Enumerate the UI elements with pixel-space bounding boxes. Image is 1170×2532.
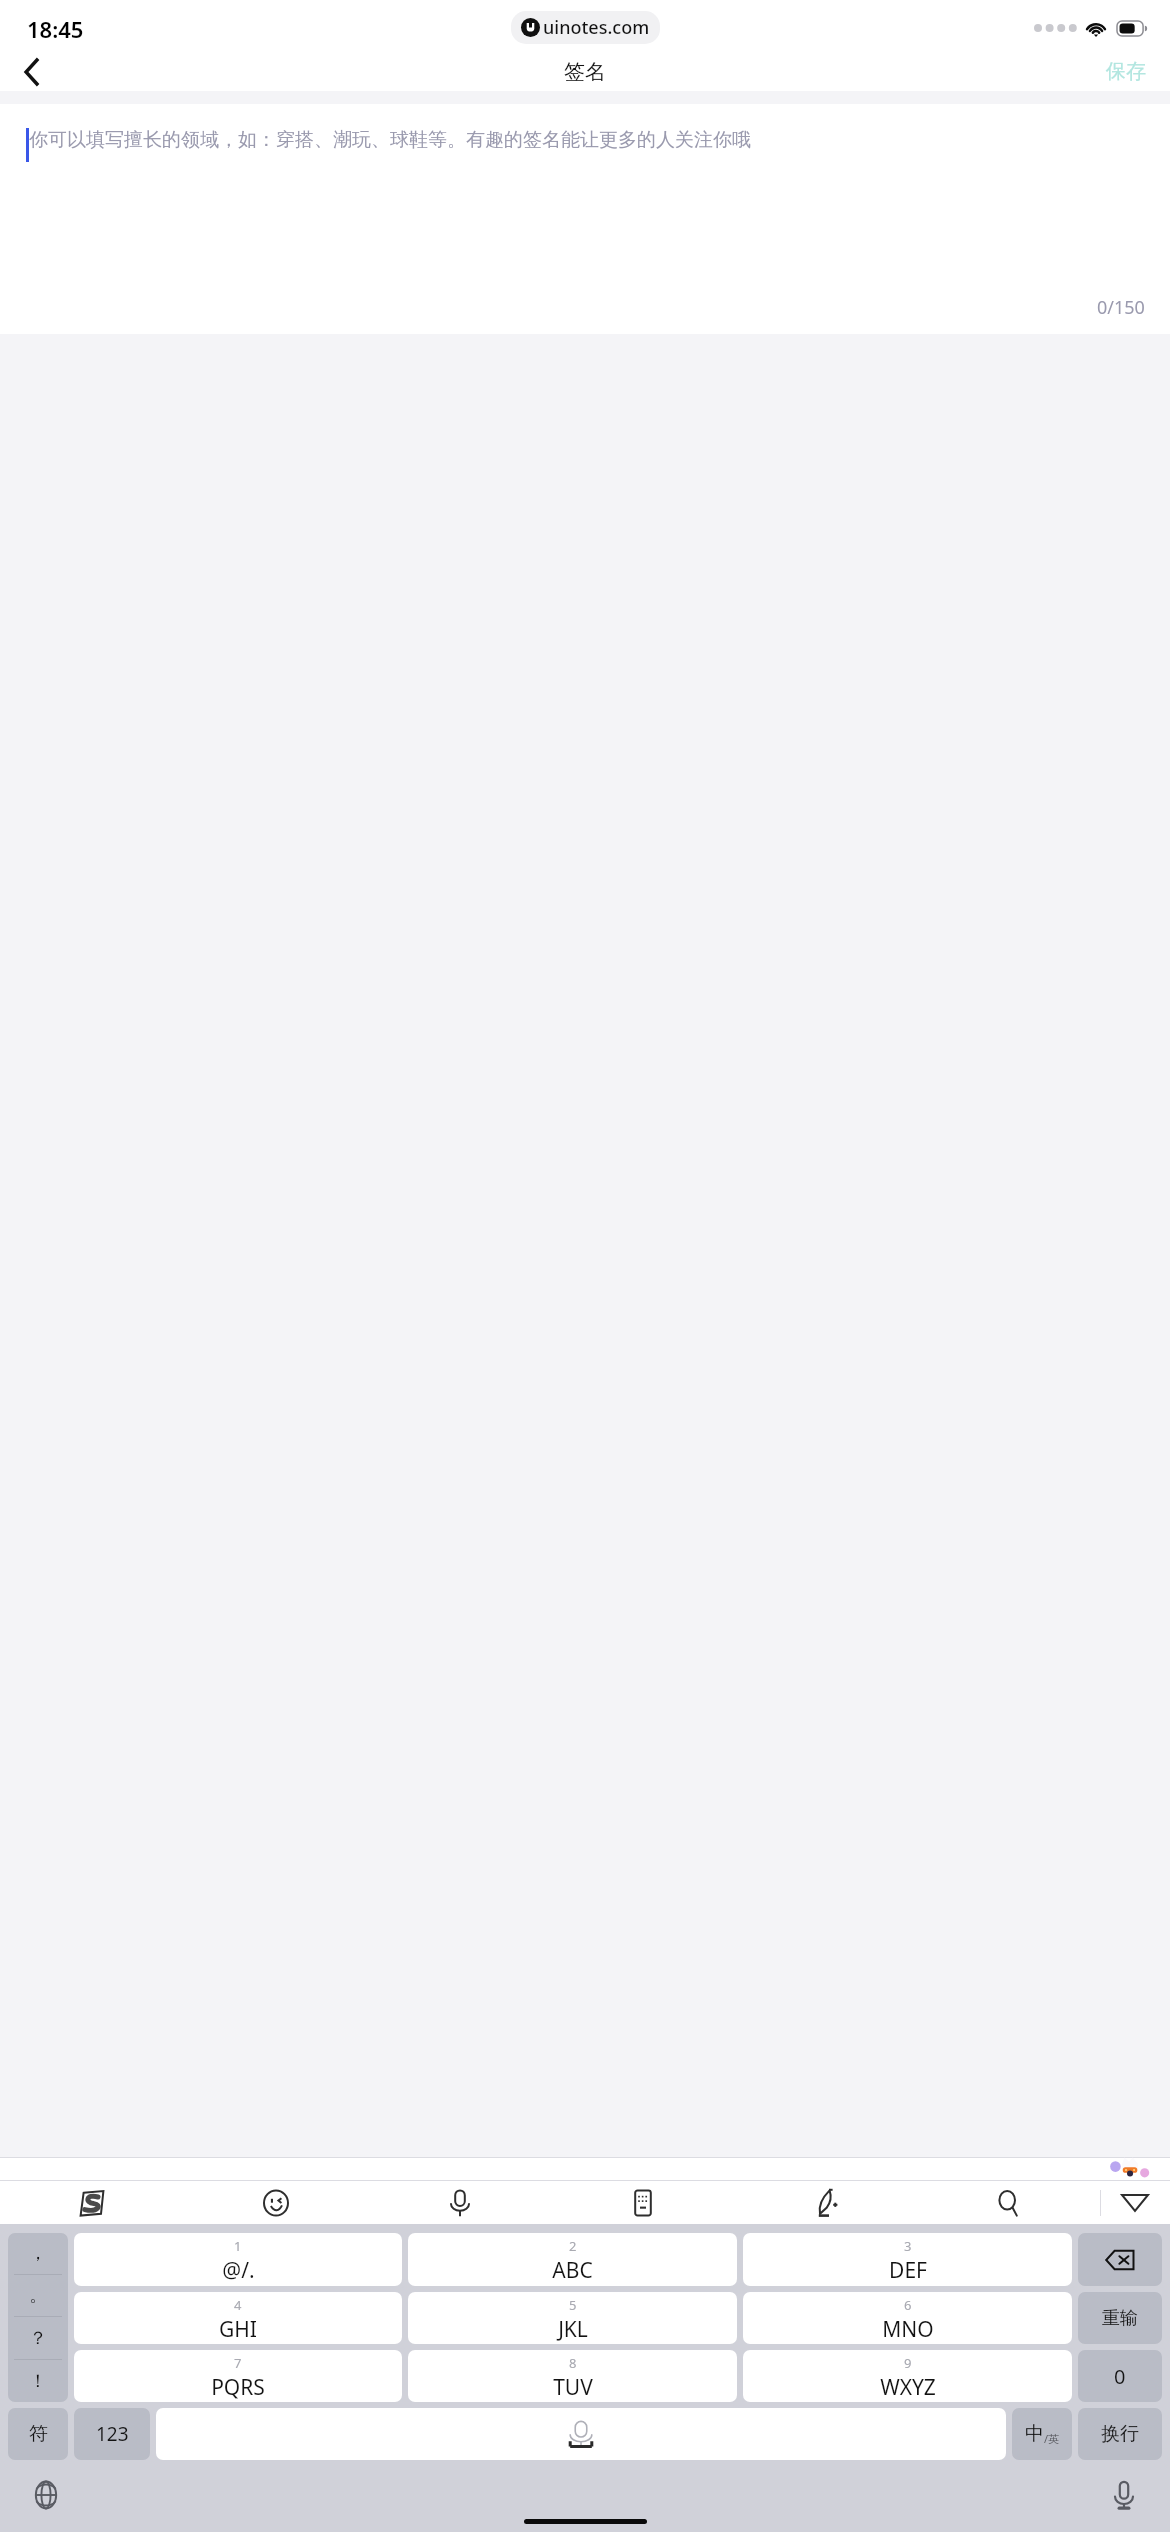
staticText: uinotes.com [543, 15, 650, 40]
staticText: 保存 [1106, 59, 1146, 84]
staticText: 中 [1025, 2422, 1044, 2446]
button[interactable]: Sogou [0, 2181, 184, 2224]
button[interactable]: 重输 [1078, 2292, 1162, 2344]
button[interactable]: Change language [24, 2473, 68, 2517]
staticText: TUV [553, 2373, 593, 2402]
staticText: ！ [29, 2370, 47, 2393]
staticText: PQRS [211, 2373, 265, 2402]
button[interactable]: Delete [1078, 2233, 1162, 2286]
button[interactable]: 0 [1078, 2350, 1162, 2402]
button[interactable]: ， [8, 2233, 68, 2402]
button[interactable]: 换行 [1078, 2408, 1162, 2460]
staticText: 换行 [1101, 2422, 1139, 2446]
button[interactable]: 3 [743, 2233, 1072, 2286]
staticText: 8 [569, 2354, 577, 2372]
staticText: /英 [1044, 2431, 1060, 2446]
button[interactable]: 中 [1012, 2408, 1072, 2460]
button[interactable]: Back [0, 52, 62, 91]
staticText: 1 [234, 2237, 242, 2255]
button[interactable]: Keyboard layout [551, 2181, 734, 2224]
staticText: 0 [1114, 2363, 1126, 2390]
staticText: 123 [96, 2421, 129, 2447]
staticText: WXYZ [880, 2373, 936, 2402]
button[interactable]: 6 [743, 2292, 1072, 2344]
staticText: 3 [904, 2237, 912, 2255]
button[interactable]: Assistant [1103, 2157, 1155, 2181]
staticText: GHI [219, 2315, 257, 2344]
staticText: 5 [569, 2296, 577, 2314]
button[interactable]: 8 [408, 2350, 737, 2402]
staticText: 2 [569, 2237, 577, 2255]
button[interactable]: 1 [74, 2233, 402, 2286]
staticText: DEF [889, 2256, 927, 2285]
button[interactable]: 123 [74, 2408, 150, 2460]
staticText: 。 [29, 2284, 47, 2307]
staticText: ？ [29, 2327, 47, 2350]
button[interactable]: 5 [408, 2292, 737, 2344]
button[interactable]: Voice input [1102, 2473, 1146, 2517]
button[interactable]: Voice input [368, 2181, 551, 2224]
button[interactable]: Handwriting [734, 2181, 917, 2224]
button[interactable]: Hide keyboard [1100, 2181, 1170, 2224]
button[interactable]: Space [156, 2408, 1006, 2460]
staticText: 符 [29, 2422, 48, 2446]
staticText: 重输 [1102, 2307, 1138, 2330]
staticText: 0/150 [1097, 295, 1145, 320]
staticText: 你可以填写擅长的领域，如：穿搭、潮玩、球鞋等。有趣的签名能让更多的人关注你哦 [29, 128, 751, 152]
staticText: 4 [234, 2296, 242, 2314]
staticText: ， [29, 2242, 47, 2265]
staticText: MNO [882, 2315, 934, 2344]
staticText: 7 [234, 2354, 242, 2372]
staticText: 签名 [564, 59, 606, 85]
button[interactable]: 保存 [1082, 52, 1170, 91]
button[interactable]: 符 [8, 2408, 68, 2460]
staticText: 18:45 [27, 14, 84, 44]
button[interactable]: 2 [408, 2233, 737, 2286]
staticText: 6 [904, 2296, 912, 2314]
staticText: @/. [222, 2256, 255, 2285]
button[interactable]: Search [917, 2181, 1100, 2224]
staticText: ABC [552, 2256, 593, 2285]
button[interactable]: 7 [74, 2350, 402, 2402]
staticText: JKL [558, 2315, 588, 2344]
button[interactable]: 4 [74, 2292, 402, 2344]
button[interactable]: 9 [743, 2350, 1072, 2402]
button[interactable]: Emoji [184, 2181, 368, 2224]
staticText: 9 [904, 2354, 912, 2372]
